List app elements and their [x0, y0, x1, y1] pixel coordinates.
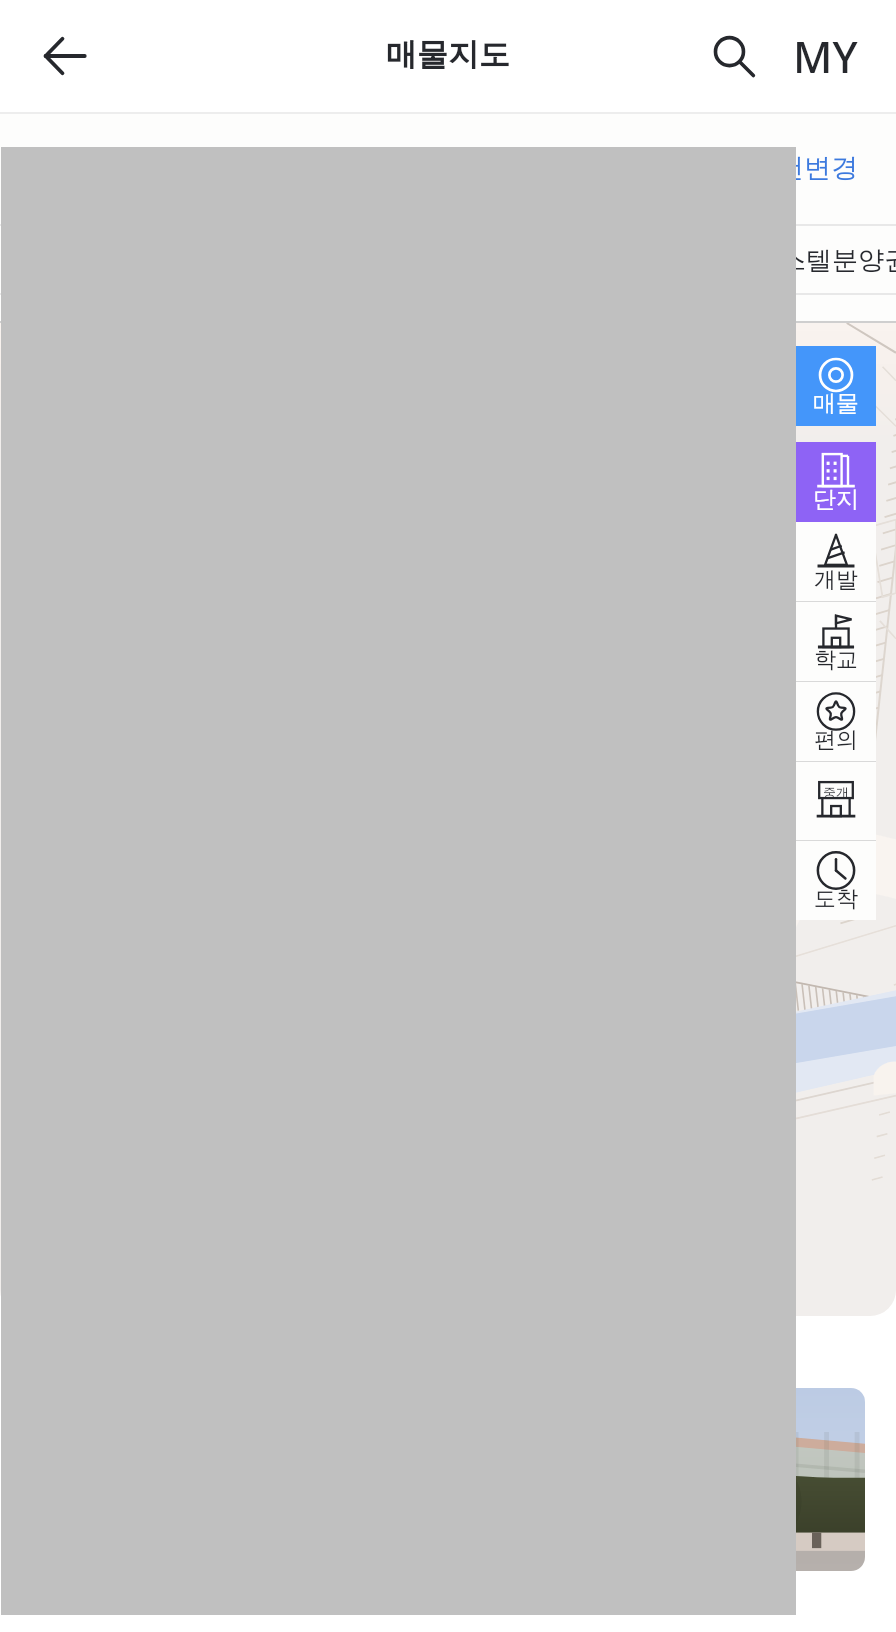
button[interactable]: Back [27, 18, 103, 94]
button[interactable]: 중개 [796, 762, 876, 840]
button[interactable]: Search [694, 17, 770, 93]
staticText: 조건변경 [750, 151, 858, 185]
button[interactable]: 오피스텔분양권 [728, 228, 896, 293]
button[interactable]: 학교 [796, 602, 876, 681]
staticText: 중개 [823, 784, 849, 800]
button[interactable]: 단지 [796, 442, 876, 522]
button[interactable]: 편의 [796, 682, 876, 761]
staticText: 학교 [814, 646, 858, 674]
staticText: 오피스텔분양권 [728, 244, 896, 277]
staticText: 개발 [814, 566, 858, 594]
staticText: 편의 [814, 726, 858, 754]
staticText: 단지 [813, 485, 859, 514]
button[interactable]: 도착 [796, 841, 876, 920]
button[interactable]: 개발 [796, 522, 876, 601]
button[interactable] [600, 1388, 865, 1571]
button[interactable]: 매물 [796, 346, 876, 426]
staticText: 도착 [814, 885, 858, 913]
button[interactable]: 조건변경 [558, 128, 858, 208]
staticText: MY [793, 27, 858, 86]
staticText: 매물지도 [386, 35, 510, 74]
button[interactable]: MY [775, 18, 875, 94]
staticText: 매물 [813, 389, 859, 418]
